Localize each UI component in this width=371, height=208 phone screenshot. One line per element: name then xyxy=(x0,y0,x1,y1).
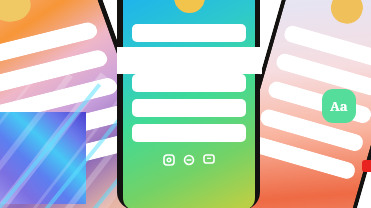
button[interactable]: Aa xyxy=(322,89,356,123)
button[interactable] xyxy=(132,74,246,92)
button[interactable] xyxy=(132,99,246,117)
button[interactable]: Chat xyxy=(204,155,214,165)
button[interactable]: Browser xyxy=(184,155,194,165)
button[interactable]: Video xyxy=(362,160,371,172)
button[interactable]: Camera xyxy=(164,155,174,165)
button[interactable] xyxy=(282,24,371,69)
button[interactable] xyxy=(266,79,371,125)
button[interactable] xyxy=(132,124,246,142)
button[interactable] xyxy=(0,48,110,100)
button[interactable] xyxy=(0,76,120,128)
button[interactable] xyxy=(0,104,130,156)
staticText: Aa xyxy=(330,97,348,115)
button[interactable] xyxy=(274,52,371,97)
button[interactable] xyxy=(250,135,357,181)
button[interactable] xyxy=(132,24,246,42)
button[interactable] xyxy=(258,107,365,153)
button[interactable] xyxy=(0,20,100,72)
button[interactable] xyxy=(0,132,140,183)
